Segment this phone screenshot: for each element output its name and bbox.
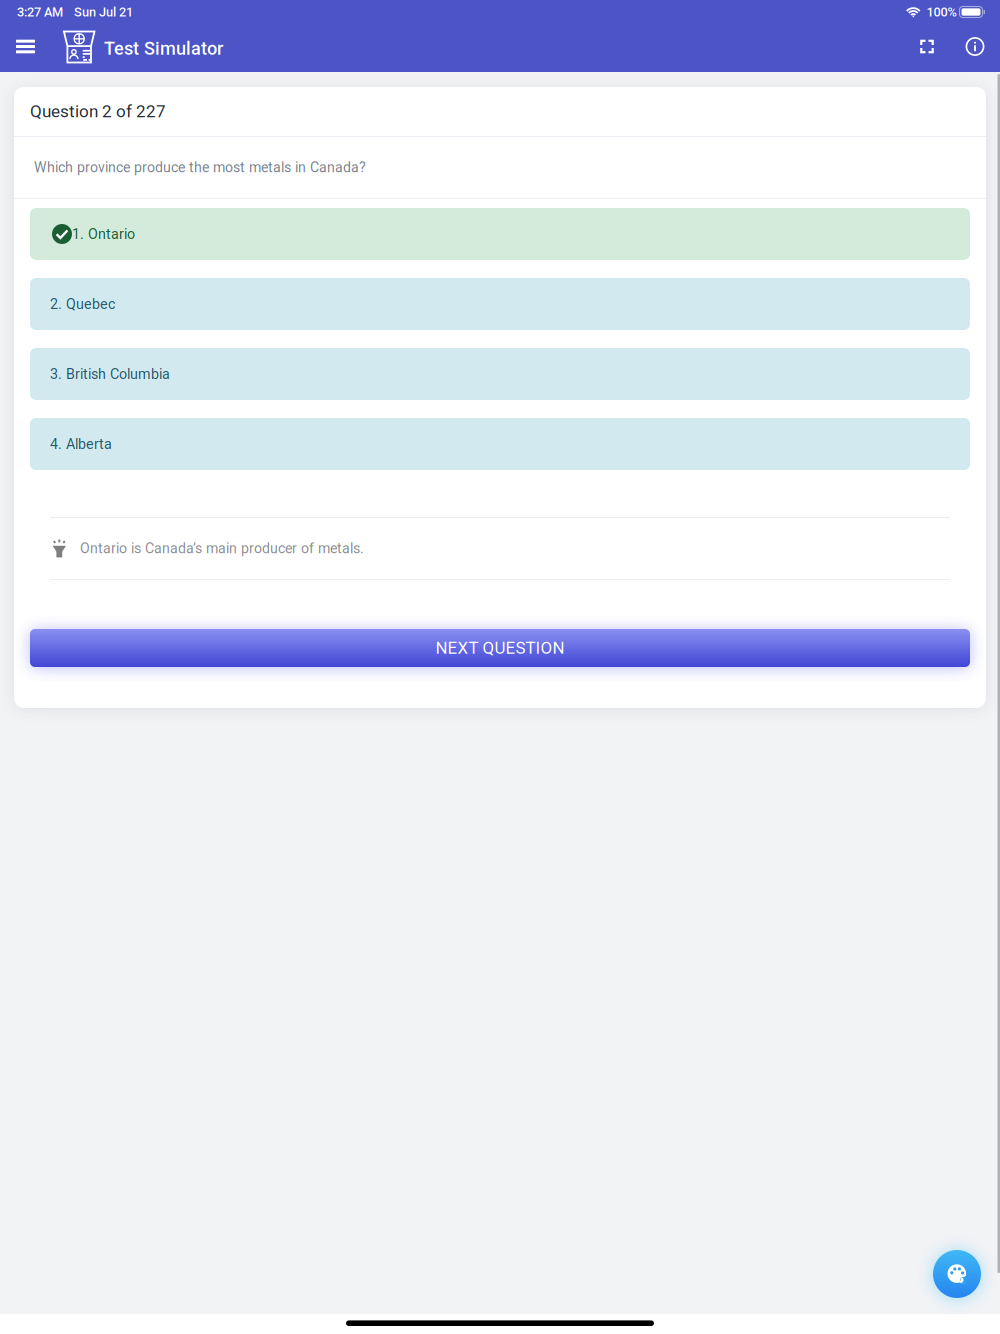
staticText: NEXT QUESTION bbox=[435, 638, 564, 658]
staticText: Which province produce the most metals i… bbox=[34, 159, 366, 176]
staticText: 100% bbox=[926, 4, 956, 19]
button[interactable]: 1. Ontario bbox=[30, 208, 970, 260]
staticText: 3:27 AM bbox=[17, 4, 63, 19]
staticText: Ontario is Canada’s main producer of met… bbox=[80, 540, 364, 557]
button[interactable]: 3. British Columbia bbox=[30, 348, 970, 400]
staticText: 4. Alberta bbox=[50, 436, 112, 452]
button[interactable]: NEXT QUESTION bbox=[30, 629, 970, 667]
staticText: Sun Jul 21 bbox=[74, 4, 133, 19]
staticText: 1. Ontario bbox=[72, 226, 135, 242]
button[interactable]: Information bbox=[953, 24, 997, 68]
button[interactable]: Full screen bbox=[905, 24, 949, 68]
button[interactable]: Theme bbox=[933, 1250, 981, 1298]
staticText: 3. British Columbia bbox=[50, 366, 170, 382]
staticText: Question 2 of 227 bbox=[30, 101, 166, 121]
button[interactable]: Menu bbox=[3, 24, 47, 68]
button[interactable]: 2. Quebec bbox=[30, 278, 970, 330]
staticText: 2. Quebec bbox=[50, 296, 115, 312]
staticText: Test Simulator bbox=[104, 38, 223, 59]
button[interactable]: 4. Alberta bbox=[30, 418, 970, 470]
